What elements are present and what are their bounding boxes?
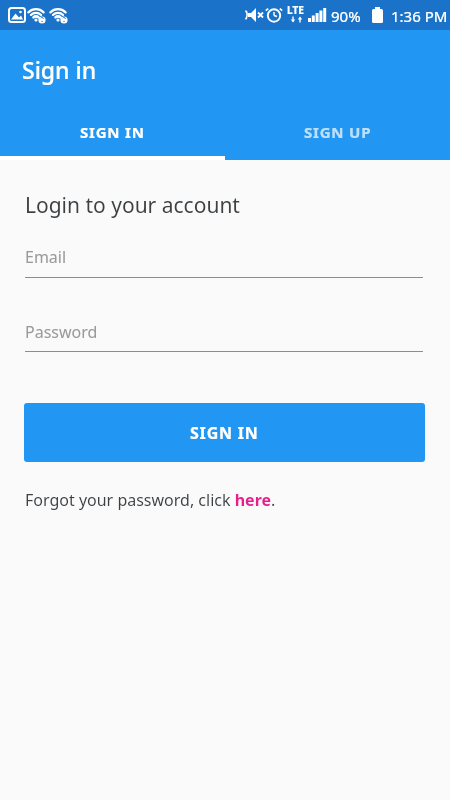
staticText: Email xyxy=(25,246,67,268)
button[interactable]: SIGN IN xyxy=(24,403,425,462)
button[interactable]: Forgot your password, click here. xyxy=(25,489,276,511)
staticText: SIGN UP xyxy=(304,122,372,142)
staticText: Sign in xyxy=(22,54,97,85)
staticText: SIGN IN xyxy=(80,122,145,142)
staticText: Password xyxy=(25,321,98,343)
staticText: 90% xyxy=(331,6,361,26)
staticText: LTE xyxy=(287,3,304,17)
staticText: SIGN IN xyxy=(190,422,259,444)
staticText: 1:36 PM xyxy=(391,6,448,26)
button[interactable]: SIGN IN xyxy=(0,104,225,160)
staticText: Login to your account xyxy=(25,191,240,220)
button[interactable]: SIGN UP xyxy=(225,104,450,160)
